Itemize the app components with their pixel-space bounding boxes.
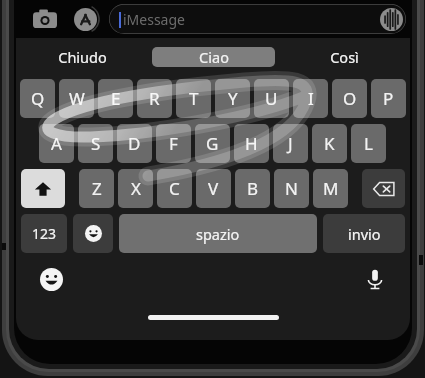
staticText: O [343, 87, 357, 110]
button[interactable]: L [351, 124, 386, 163]
button[interactable]: R [137, 79, 172, 118]
button[interactable]: Emoji keyboard [34, 262, 68, 296]
staticText: D [128, 132, 141, 155]
button[interactable]: H [234, 124, 269, 163]
button[interactable]: W [59, 79, 94, 118]
button[interactable]: Shift [21, 169, 65, 208]
staticText: C [169, 177, 180, 200]
button[interactable]: V [196, 169, 231, 208]
button[interactable]: B [235, 169, 270, 208]
staticText: spazio [196, 224, 240, 244]
button[interactable]: Backspace [362, 169, 405, 208]
button[interactable]: Camera [28, 2, 62, 36]
staticText: K [324, 132, 335, 155]
staticText: H [245, 132, 258, 155]
staticText: L [364, 132, 373, 155]
button[interactable]: I [293, 79, 328, 118]
staticText: B [247, 177, 259, 200]
staticText: M [323, 177, 339, 200]
staticText: Così [330, 47, 359, 67]
button[interactable]: invio [323, 214, 405, 253]
button[interactable]: G [195, 124, 230, 163]
button[interactable]: F [156, 124, 191, 163]
staticText: I [308, 87, 314, 110]
button[interactable]: Z [79, 169, 114, 208]
button[interactable]: spazio [119, 214, 317, 253]
button[interactable]: Y [215, 79, 250, 118]
button[interactable]: Chiudo [20, 47, 144, 67]
staticText: Y [228, 87, 238, 110]
button[interactable]: 123 [21, 214, 67, 253]
button[interactable]: S [78, 124, 113, 163]
button[interactable]: Record audio [379, 7, 403, 31]
staticText: X [131, 177, 141, 200]
button[interactable]: T [176, 79, 211, 118]
staticText: S [91, 132, 101, 155]
staticText: V [208, 177, 219, 200]
button[interactable]: P [371, 79, 406, 118]
button[interactable]: N [274, 169, 309, 208]
button[interactable]: U [254, 79, 289, 118]
staticText: R [149, 87, 160, 110]
staticText: Q [31, 87, 45, 110]
staticText: Z [92, 177, 102, 200]
button[interactable]: A [39, 124, 74, 163]
staticText: Ciao [199, 47, 229, 67]
staticText: 123 [32, 224, 57, 243]
button[interactable]: D [117, 124, 152, 163]
button[interactable]: Dictation [358, 262, 392, 296]
staticText: N [285, 177, 298, 200]
button[interactable]: C [157, 169, 192, 208]
staticText: J [288, 132, 293, 155]
staticText: invio [348, 224, 381, 244]
button[interactable]: App Store [68, 2, 102, 36]
staticText: W [69, 87, 85, 110]
staticText: Chiudo [58, 47, 107, 67]
staticText: E [111, 87, 121, 110]
button[interactable]: Emoji [73, 214, 113, 253]
staticText: G [206, 132, 219, 155]
staticText: T [189, 87, 199, 110]
button[interactable]: J [273, 124, 308, 163]
staticText: P [383, 87, 394, 110]
button[interactable]: K [312, 124, 347, 163]
button[interactable]: Q [20, 79, 55, 118]
button[interactable]: X [118, 169, 153, 208]
button[interactable]: iMessage [109, 4, 406, 34]
staticText: A [51, 132, 62, 155]
button[interactable]: E [98, 79, 133, 118]
staticText: U [265, 87, 278, 110]
button[interactable]: O [332, 79, 367, 118]
staticText: F [169, 132, 178, 155]
button[interactable]: Così [283, 47, 406, 67]
button[interactable]: M [313, 169, 348, 208]
button[interactable]: Ciao [152, 47, 275, 67]
staticText: iMessage [123, 10, 185, 29]
